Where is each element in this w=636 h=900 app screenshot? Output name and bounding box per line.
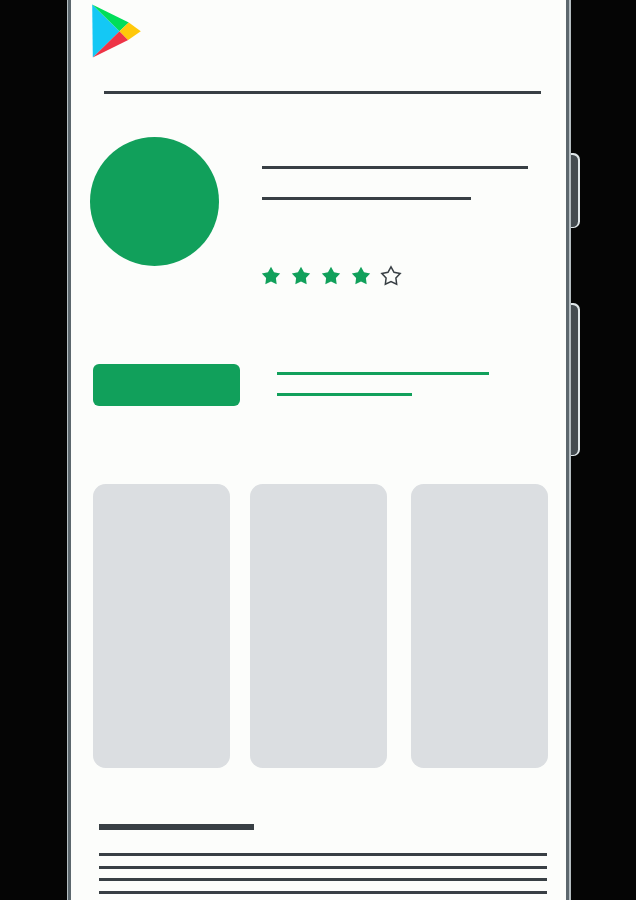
button[interactable]: Volume — [560, 155, 578, 227]
button[interactable]: Install — [93, 364, 240, 406]
button[interactable]: Google Play — [92, 4, 141, 58]
button[interactable]: Rated 4 of 5 stars — [262, 267, 400, 285]
button[interactable]: Power — [560, 305, 578, 455]
button[interactable]: App icon — [90, 137, 219, 266]
